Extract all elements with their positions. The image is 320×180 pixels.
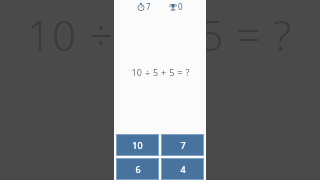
button[interactable]: 7 [161, 134, 204, 156]
button[interactable]: 4 [161, 158, 204, 180]
staticText: 7 [180, 139, 186, 151]
button[interactable]: 6 [116, 158, 159, 180]
staticText: 7 [146, 1, 151, 12]
staticText: 10 ÷ 5 + 5 = ? [131, 66, 190, 78]
staticText: 6 [135, 163, 141, 175]
staticText: 0 [178, 1, 183, 12]
staticText: 4 [180, 163, 186, 175]
button[interactable]: Score [168, 1, 184, 12]
button[interactable]: Time remaining [136, 1, 152, 12]
button[interactable]: 10 [116, 134, 159, 156]
staticText: 10 [132, 139, 143, 151]
staticText: 10 ÷ 5 + 5 = ? [27, 6, 293, 63]
